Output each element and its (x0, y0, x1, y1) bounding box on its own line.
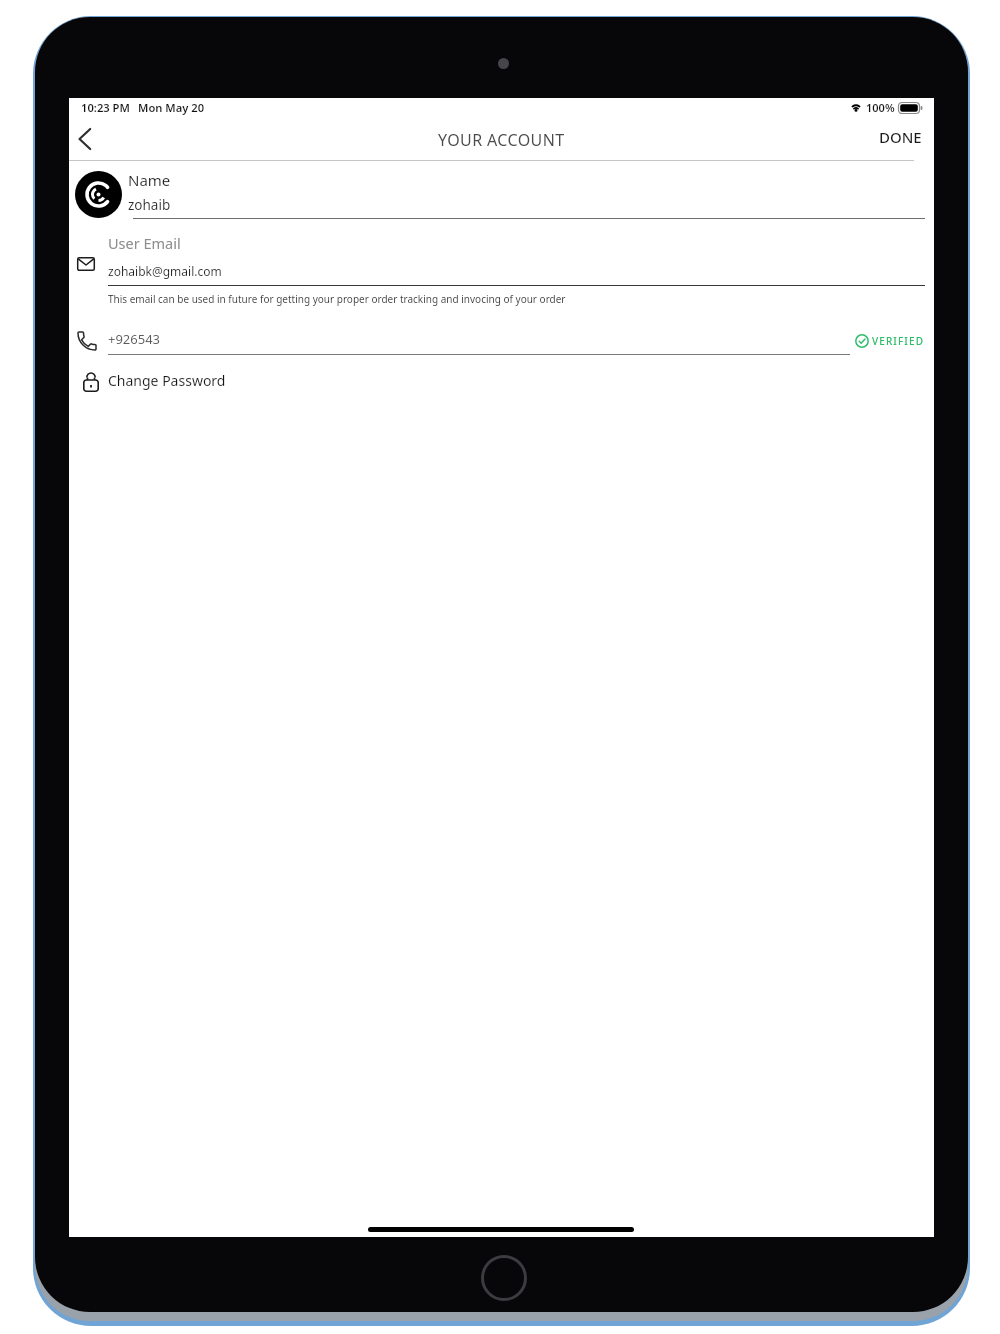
staticText: This email can be used in future for get… (108, 292, 566, 306)
button[interactable]: DONE (877, 125, 924, 149)
staticText: 10:23 PM (81, 100, 130, 115)
staticText: User Email (108, 233, 181, 253)
button[interactable] (71, 122, 105, 156)
staticText: VERIFIED (872, 334, 925, 348)
staticText: Change Password (108, 371, 226, 390)
staticText: +926543 (108, 330, 161, 348)
staticText: 100% (866, 100, 895, 115)
staticText: DONE (879, 127, 922, 147)
button[interactable]: Change Password (69, 366, 934, 398)
staticText: Mon May 20 (138, 100, 205, 115)
button[interactable]: Name (128, 166, 928, 216)
staticText: zohaibk@gmail.com (108, 263, 222, 279)
staticText: zohaib (128, 196, 171, 214)
button[interactable]: +926543 (69, 323, 934, 359)
button[interactable]: User Email (69, 228, 934, 308)
button[interactable] (75, 171, 122, 218)
staticText: YOUR ACCOUNT (438, 129, 565, 151)
staticText: Name (128, 170, 171, 190)
